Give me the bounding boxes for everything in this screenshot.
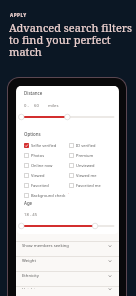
- button[interactable]: Online now: [24, 160, 53, 170]
- button[interactable]: Unviewed: [69, 160, 95, 170]
- staticText: Selfie verified: [31, 143, 57, 148]
- button[interactable]: Ethnicity: [16, 272, 119, 286]
- staticText: 0 -: [24, 103, 29, 109]
- staticText: miles: [48, 103, 59, 109]
- staticText: 18 - 45: [24, 212, 38, 218]
- button[interactable]: Favorited me: [69, 180, 101, 190]
- button[interactable]: Show members seeking: [16, 242, 119, 256]
- staticText: Favorited me: [76, 183, 101, 188]
- staticText: Background check: [31, 193, 66, 198]
- staticText: Options: [24, 131, 41, 137]
- staticText: Age: [24, 200, 33, 206]
- button[interactable]: Premium: [69, 150, 94, 160]
- button[interactable]: Height: [16, 287, 119, 296]
- staticText: Favorited: [31, 183, 49, 188]
- button[interactable]: Background check: [24, 190, 69, 200]
- button[interactable]: Photos: [24, 150, 45, 160]
- button[interactable]: Viewed me: [69, 170, 97, 180]
- staticText: 60: [34, 103, 39, 109]
- staticText: Premium: [76, 153, 94, 158]
- staticText: APPLY: [10, 12, 27, 18]
- staticText: Advanced search filters to find your per…: [9, 20, 132, 59]
- button[interactable]: Weight: [16, 257, 119, 271]
- button[interactable]: ID verified: [69, 140, 96, 150]
- staticText: Weight: [22, 258, 108, 264]
- staticText: Height: [22, 287, 108, 289]
- staticText: Viewed me: [76, 173, 97, 178]
- button[interactable]: Viewed: [24, 170, 45, 180]
- staticText: ID verified: [76, 143, 96, 148]
- staticText: Ethnicity: [22, 273, 108, 279]
- staticText: Online now: [31, 163, 53, 168]
- staticText: Photos: [31, 153, 45, 158]
- staticText: Distance: [24, 90, 43, 96]
- button[interactable]: Selfie verified: [24, 140, 57, 150]
- staticText: Unviewed: [76, 163, 95, 168]
- staticText: Show members seeking: [22, 243, 108, 249]
- staticText: Viewed: [31, 173, 45, 178]
- button[interactable]: Favorited: [24, 180, 49, 190]
